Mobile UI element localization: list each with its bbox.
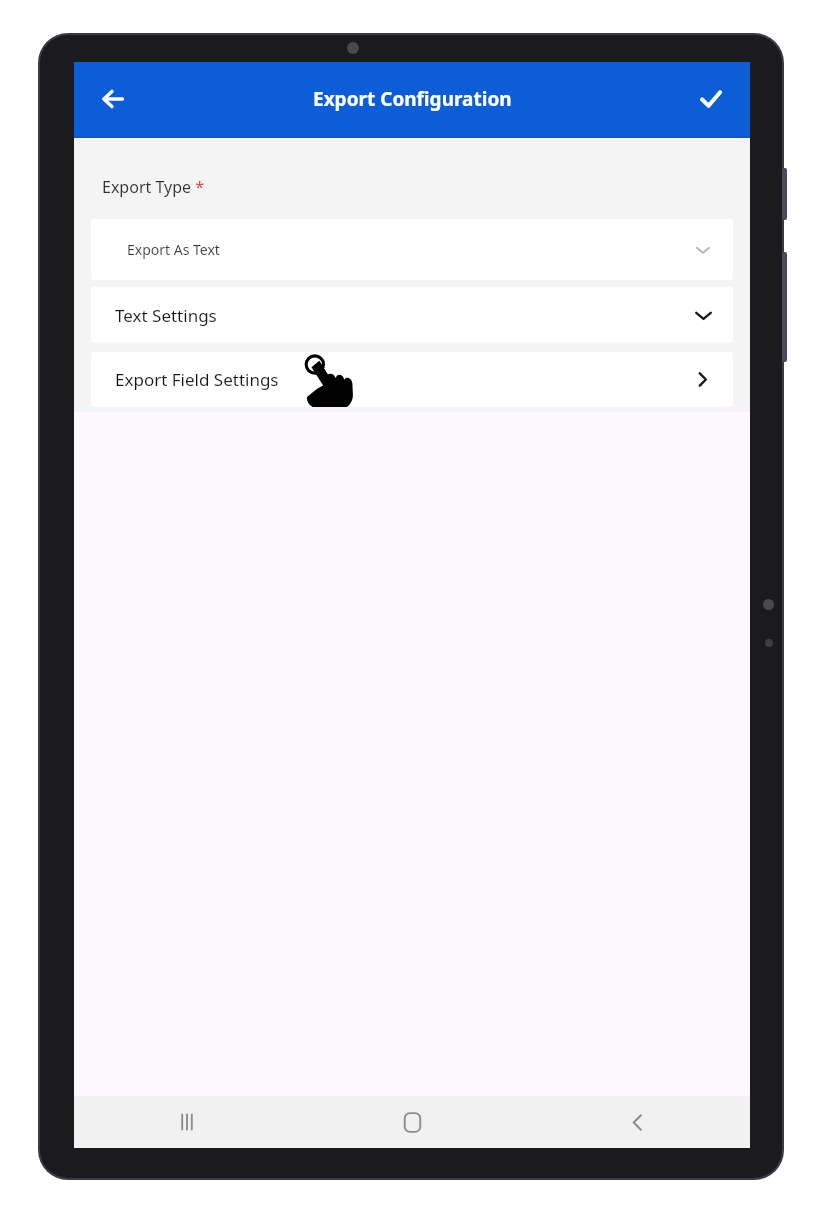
staticText: Export Type * [102,176,205,198]
button[interactable]: Back [86,72,140,126]
button[interactable]: Recent apps [74,1096,300,1148]
button[interactable]: Save [684,72,738,126]
button[interactable]: Back [525,1096,750,1148]
staticText: Export Configuration [313,86,512,112]
button[interactable]: Export Field Settings [91,352,733,407]
staticText: Export Field Settings [115,368,279,391]
button[interactable]: Home [300,1096,525,1148]
staticText: Export As Text [127,240,220,259]
button[interactable]: Export As Text [91,219,733,280]
button[interactable]: Text Settings [91,287,733,343]
staticText: Text Settings [115,304,217,327]
